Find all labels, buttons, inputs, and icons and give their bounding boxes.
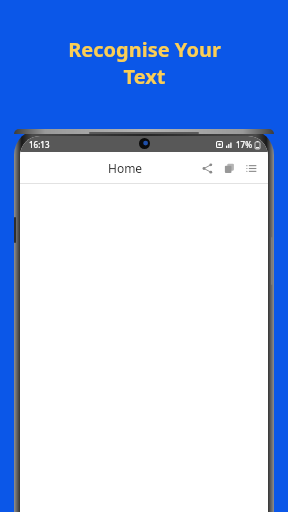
staticText: 17% — [236, 139, 252, 150]
staticText: 16:13 — [29, 139, 50, 150]
staticText: Recognise Your Text — [68, 36, 221, 90]
button[interactable]: List — [240, 157, 262, 179]
button[interactable]: Copy — [218, 157, 240, 179]
button[interactable]: Share — [196, 157, 218, 179]
staticText: Home — [108, 160, 143, 176]
